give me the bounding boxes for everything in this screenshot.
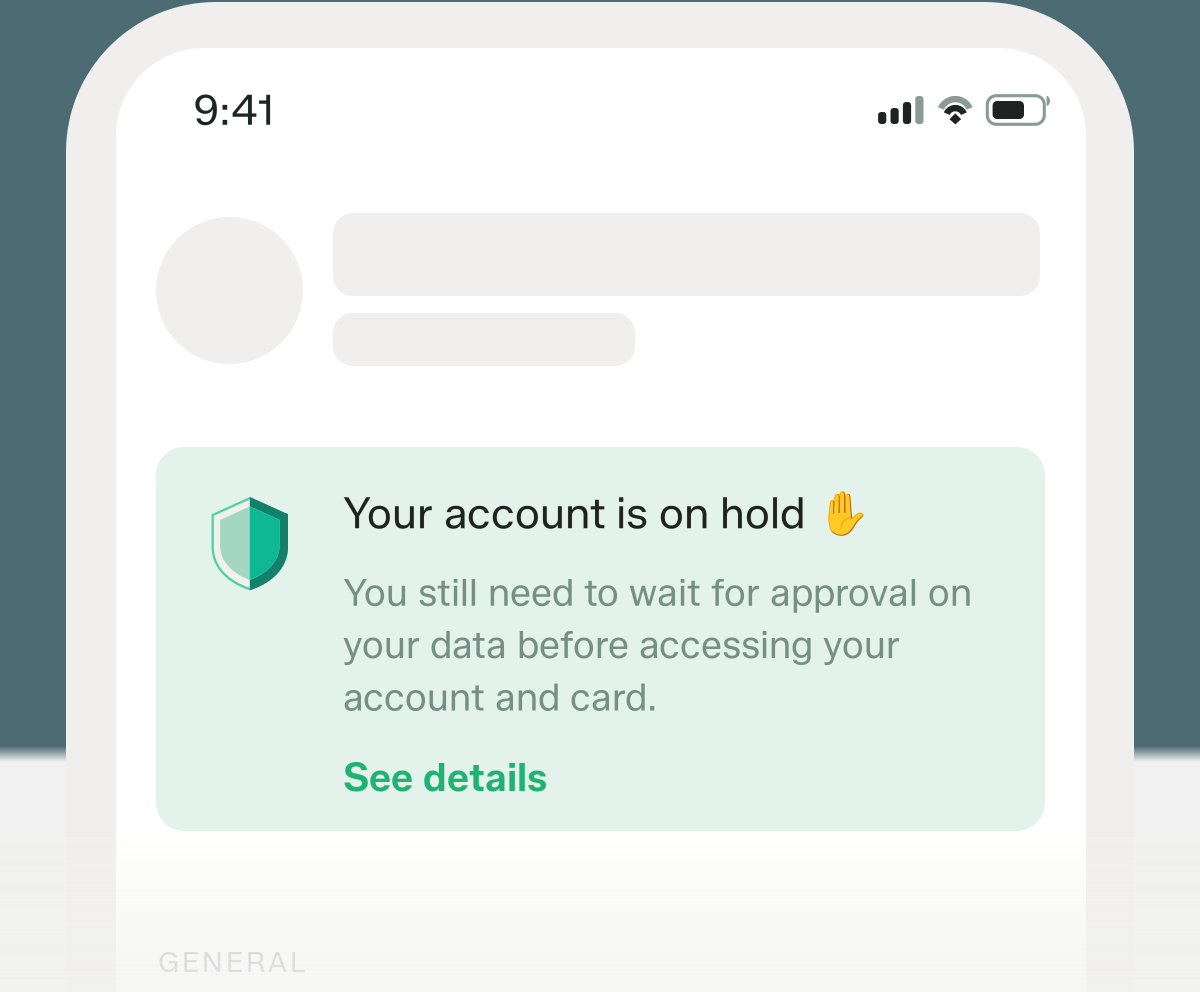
staticText: GENERAL xyxy=(158,945,305,979)
staticText: See details xyxy=(343,754,547,801)
staticText: Your account is on hold ✋ xyxy=(343,487,870,539)
button[interactable]: See details xyxy=(343,720,547,835)
staticText: You still need to wait for approval on y… xyxy=(343,570,972,720)
staticText: 9:41 xyxy=(193,85,274,135)
